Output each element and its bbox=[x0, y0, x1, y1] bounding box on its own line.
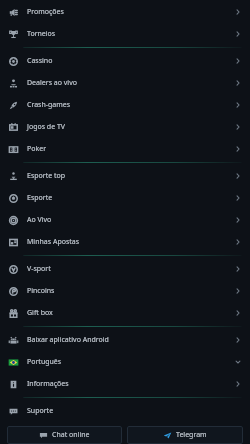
button[interactable]: Dealers ao vivo bbox=[0, 72, 250, 94]
staticText: Cassino bbox=[27, 56, 53, 66]
button[interactable]: Poker bbox=[0, 138, 250, 160]
button[interactable]: Minhas Apostas bbox=[0, 231, 250, 253]
staticText: Telegram bbox=[176, 430, 207, 440]
button[interactable]: Esporte top bbox=[0, 165, 250, 187]
button[interactable]: Jogos de TV bbox=[0, 116, 250, 138]
staticText: Pincoins bbox=[27, 286, 55, 296]
staticText: Dealers ao vivo bbox=[27, 78, 77, 88]
staticText: Chat online bbox=[52, 430, 90, 440]
button[interactable]: Telegram bbox=[127, 426, 243, 444]
staticText: Crash-games bbox=[27, 100, 71, 110]
button[interactable]: Português bbox=[0, 351, 250, 373]
button[interactable]: Promoções bbox=[0, 1, 250, 23]
button[interactable]: Chat online bbox=[7, 426, 122, 444]
staticText: Jogos de TV bbox=[27, 122, 66, 132]
staticText: Torneios bbox=[27, 29, 56, 39]
button[interactable]: Gift box bbox=[0, 302, 250, 324]
staticText: Informações bbox=[27, 379, 69, 389]
button[interactable]: Informações bbox=[0, 373, 250, 395]
staticText: Esporte bbox=[27, 193, 53, 203]
button[interactable]: Torneios bbox=[0, 23, 250, 45]
staticText: Poker bbox=[27, 144, 47, 154]
staticText: Baixar aplicativo Android bbox=[27, 335, 109, 345]
button[interactable]: Ao Vivo bbox=[0, 209, 250, 231]
button[interactable]: Pincoins bbox=[0, 280, 250, 302]
staticText: Suporte bbox=[27, 406, 54, 416]
staticText: V-sport bbox=[27, 264, 51, 274]
button[interactable]: Cassino bbox=[0, 50, 250, 72]
button[interactable]: Crash-games bbox=[0, 94, 250, 116]
button[interactable]: Baixar aplicativo Android bbox=[0, 329, 250, 351]
staticText: Gift box bbox=[27, 308, 53, 318]
staticText: Ao Vivo bbox=[27, 215, 52, 225]
button[interactable]: V-sport bbox=[0, 258, 250, 280]
button[interactable]: Suporte bbox=[0, 400, 250, 422]
staticText: Minhas Apostas bbox=[27, 237, 80, 247]
button[interactable]: Esporte bbox=[0, 187, 250, 209]
staticText: Português bbox=[27, 357, 62, 367]
staticText: Promoções bbox=[27, 7, 64, 17]
staticText: Esporte top bbox=[27, 171, 66, 181]
